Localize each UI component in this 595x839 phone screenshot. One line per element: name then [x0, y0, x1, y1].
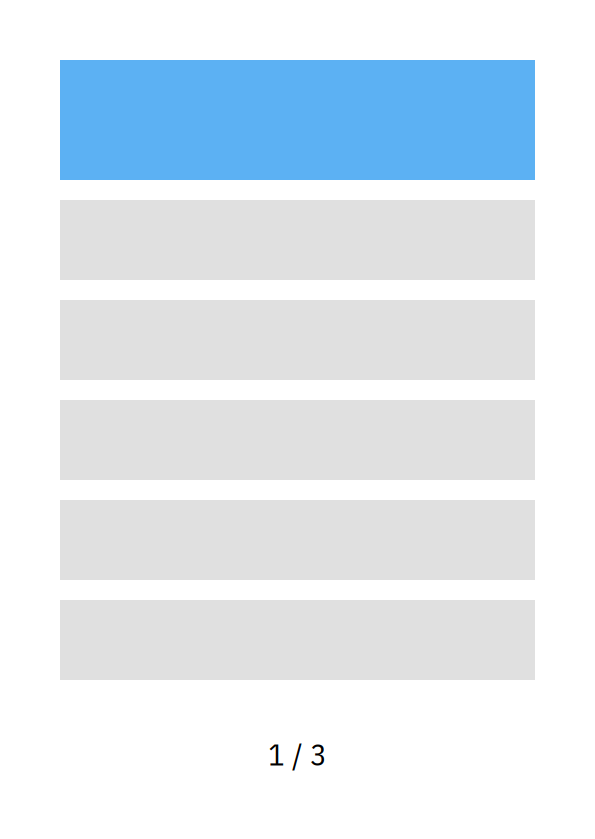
staticText: 1 / 3 — [268, 734, 327, 774]
